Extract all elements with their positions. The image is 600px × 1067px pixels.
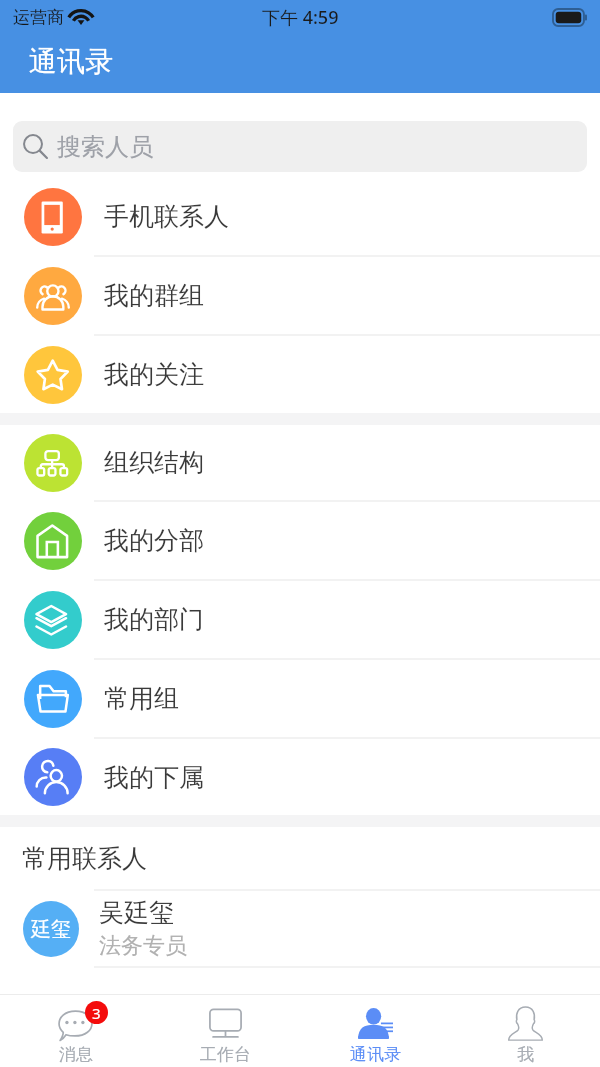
button[interactable]: 常用组 bbox=[0, 660, 600, 737]
button[interactable]: 组织结构 bbox=[0, 425, 600, 500]
staticText: 3 bbox=[92, 1003, 101, 1023]
staticText: 吴廷玺 bbox=[99, 897, 174, 928]
staticText: 通讯录 bbox=[29, 44, 113, 79]
button[interactable]: 手机联系人 bbox=[0, 178, 600, 255]
staticText: 组织结构 bbox=[104, 447, 204, 478]
staticText: 通讯录 bbox=[350, 1044, 401, 1065]
button[interactable]: 廷玺 bbox=[0, 891, 600, 966]
staticText: 我的群组 bbox=[104, 280, 204, 311]
button[interactable]: 我的下属 bbox=[0, 739, 600, 815]
staticText: 常用组 bbox=[104, 683, 179, 714]
staticText: 我的分部 bbox=[104, 525, 204, 556]
staticText: 我 bbox=[517, 1044, 534, 1065]
staticText: 运营商 bbox=[13, 7, 64, 28]
button[interactable]: 我的分部 bbox=[0, 502, 600, 579]
button[interactable]: 3 bbox=[0, 995, 150, 1067]
button[interactable]: 通讯录 bbox=[300, 995, 450, 1067]
button[interactable]: 工作台 bbox=[150, 995, 300, 1067]
staticText: 我的部门 bbox=[104, 604, 204, 635]
staticText: 搜索人员 bbox=[57, 132, 153, 162]
staticText: 我的下属 bbox=[104, 762, 204, 793]
staticText: 工作台 bbox=[200, 1044, 251, 1065]
staticText: 我的关注 bbox=[104, 359, 204, 390]
staticText: 手机联系人 bbox=[104, 201, 229, 232]
staticText: 法务专员 bbox=[99, 932, 187, 960]
button[interactable]: 我 bbox=[450, 995, 600, 1067]
staticText: 常用联系人 bbox=[22, 843, 147, 874]
staticText: 消息 bbox=[59, 1044, 93, 1065]
staticText: 下午 4:59 bbox=[262, 5, 339, 30]
button[interactable]: 我的部门 bbox=[0, 581, 600, 658]
button[interactable]: 我的群组 bbox=[0, 257, 600, 334]
button[interactable]: 搜索人员 bbox=[13, 121, 587, 172]
button[interactable]: 我的关注 bbox=[0, 336, 600, 413]
staticText: 廷玺 bbox=[31, 917, 71, 942]
